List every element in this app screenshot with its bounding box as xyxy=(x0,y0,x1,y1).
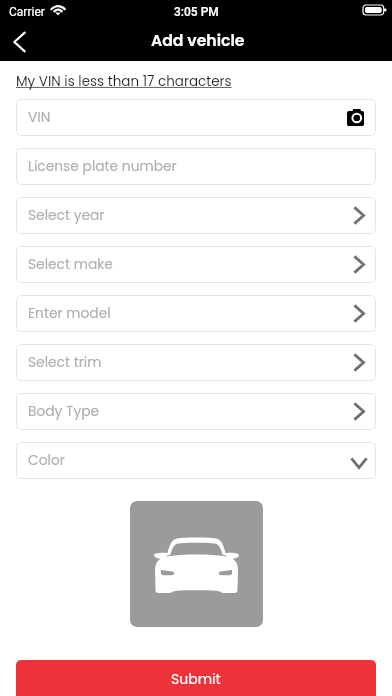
staticText: VIN xyxy=(28,108,51,127)
other: Open picker xyxy=(353,353,365,372)
other: Battery xyxy=(363,5,386,15)
staticText: Body Type xyxy=(28,402,100,421)
staticText: Select trim xyxy=(28,353,102,372)
other: Scan VIN with camera xyxy=(347,109,364,126)
staticText: Enter model xyxy=(28,304,111,323)
button[interactable]: Submit xyxy=(16,660,376,696)
staticText: My VIN is less than 17 characters xyxy=(16,72,232,91)
button[interactable]: Select make xyxy=(16,246,376,283)
button[interactable]: VIN xyxy=(16,99,376,136)
staticText: Color xyxy=(28,451,65,470)
button[interactable]: Select trim xyxy=(16,344,376,381)
other: Open picker xyxy=(353,304,365,323)
button[interactable]: License plate number xyxy=(16,148,376,185)
button[interactable]: Back xyxy=(0,23,41,60)
staticText: License plate number xyxy=(28,157,177,176)
other: Open picker xyxy=(353,206,365,225)
other: Open dropdown xyxy=(350,457,368,469)
other: Open picker xyxy=(353,402,365,421)
staticText: Add vehicle xyxy=(151,30,245,52)
staticText: Carrier xyxy=(9,5,45,19)
other: Open picker xyxy=(353,255,365,274)
button[interactable]: Body Type xyxy=(16,393,376,430)
button[interactable]: Vehicle photo xyxy=(130,501,263,627)
staticText: Submit xyxy=(171,669,221,689)
button[interactable]: Color xyxy=(16,442,376,479)
button[interactable]: My VIN is less than 17 characters xyxy=(16,72,232,91)
staticText: 3:05 PM xyxy=(174,5,219,19)
button[interactable]: Enter model xyxy=(16,295,376,332)
staticText: Select make xyxy=(28,255,113,274)
button[interactable]: Select year xyxy=(16,197,376,234)
staticText: Select year xyxy=(28,206,105,225)
